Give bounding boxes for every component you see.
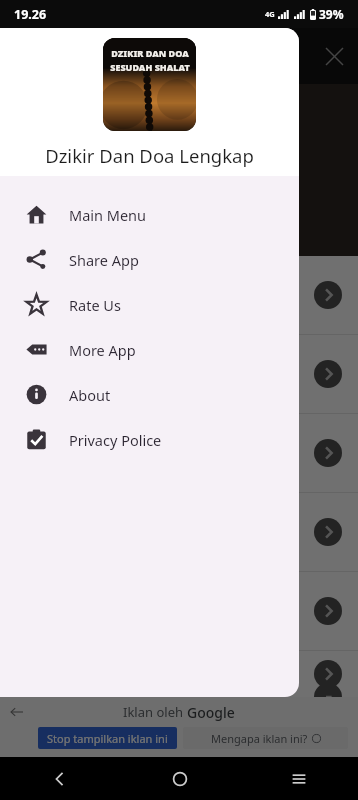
button[interactable]: Main Menu [0,192,299,237]
button[interactable] [0,493,358,571]
staticText: Dzikir Dan Doa Lengkap [45,143,254,168]
staticText: SESUDAH SHALAT [108,121,250,143]
staticText: SESUDAH SHALAT [110,61,190,73]
button[interactable]: More App [0,327,299,372]
staticText: Mengapa iklan ini? [211,731,308,746]
staticText: Main Menu [69,205,147,225]
staticText: Google [187,703,235,722]
button[interactable] [0,256,358,334]
staticText: DZIKIR DAN DOA [110,96,248,118]
button[interactable]: Share App [0,237,299,282]
staticText: More App [69,340,136,360]
button[interactable]: Back [5,700,29,724]
button[interactable] [0,572,358,650]
staticText: Iklan oleh [123,703,187,721]
staticText: 19.26 [14,6,47,23]
staticText: About [69,385,111,405]
staticText: DZIKIR DAN DOA [111,47,189,59]
button[interactable]: Privacy Police [0,417,299,462]
button[interactable] [0,651,358,697]
button[interactable]: Home [120,757,239,800]
button[interactable]: Back [0,757,120,800]
button[interactable]: Rate Us [0,282,299,327]
button[interactable]: Close [310,32,358,80]
button[interactable]: Recent apps [239,757,358,800]
button[interactable]: Mengapa iklan ini? [183,727,348,749]
staticText: 4G [265,9,275,19]
staticText: Stop tampilkan iklan ini [47,731,168,746]
staticText: Rate Us [69,295,121,315]
button[interactable]: DZIKIR DAN DOA [64,84,294,256]
staticText: Privacy Police [69,430,162,450]
button[interactable]: About [0,372,299,417]
button[interactable]: Stop tampilkan iklan ini [38,727,177,749]
button[interactable] [0,335,358,413]
staticText: 39% [319,6,344,22]
button[interactable] [0,414,358,492]
staticText: Share App [69,250,139,270]
